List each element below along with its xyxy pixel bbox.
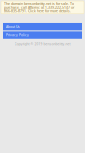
staticText: The domain bensonbeitty.net is for sale.… [4, 1, 74, 6]
staticText: 866-835-8791. Click here for more detail… [4, 8, 71, 13]
staticText: purchase, call Afternic at 1-339-222-514… [4, 5, 74, 10]
button[interactable]: Privacy Policy [3, 31, 82, 39]
staticText: About Us [6, 24, 20, 29]
staticText: Privacy Policy [6, 33, 29, 37]
staticText: Copyright © 2019 bensonbeitty.net [14, 42, 70, 46]
button[interactable]: About Us [3, 23, 82, 30]
